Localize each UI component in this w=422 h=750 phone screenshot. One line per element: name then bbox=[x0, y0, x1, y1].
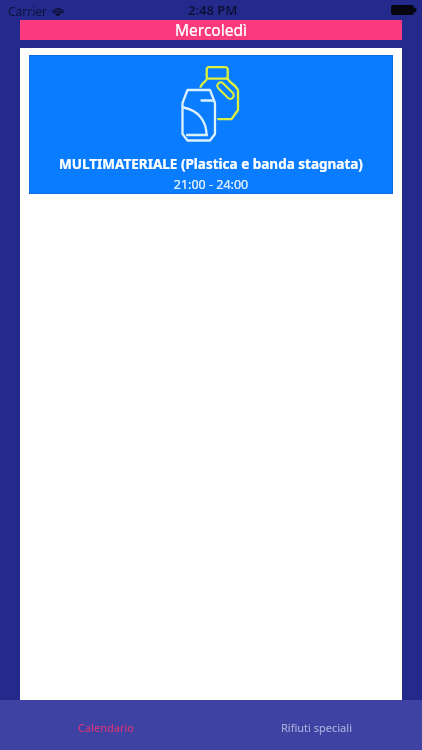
staticText: 21:00 - 24:00 bbox=[29, 176, 393, 193]
staticText: Carrier bbox=[8, 3, 48, 19]
staticText: Calendario bbox=[78, 720, 134, 735]
staticText: Rifiuti speciali bbox=[281, 720, 352, 735]
button[interactable]: Rifiuti speciali bbox=[211, 700, 422, 750]
other: Wi-Fi bbox=[52, 6, 64, 17]
staticText: Mercoledì bbox=[175, 19, 247, 39]
button[interactable]: Calendario bbox=[0, 700, 211, 750]
staticText: 2:48 PM bbox=[188, 1, 238, 19]
staticText: MULTIMATERIALE (Plastica e banda stagnat… bbox=[29, 155, 393, 173]
other: Battery bbox=[391, 5, 417, 15]
button[interactable]: MULTIMATERIALE (Plastica e banda stagnat… bbox=[29, 55, 393, 194]
